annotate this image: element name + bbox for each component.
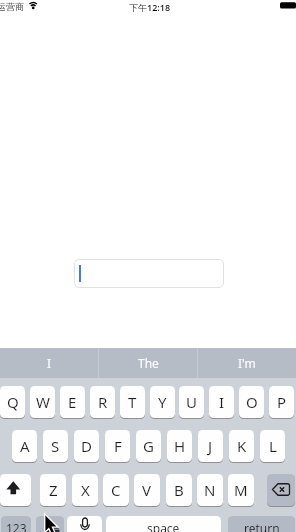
button[interactable]: [106, 516, 221, 532]
staticText: G: [143, 436, 154, 456]
staticText: 下午12:18: [129, 1, 171, 13]
staticText: Y: [158, 392, 167, 412]
button[interactable]: [267, 474, 295, 506]
button[interactable]: [36, 516, 64, 532]
button[interactable]: K: [229, 430, 254, 462]
button[interactable]: [74, 259, 224, 288]
staticText: D: [81, 436, 92, 456]
button[interactable]: G: [136, 430, 161, 462]
button[interactable]: S: [43, 430, 68, 462]
staticText: X: [81, 480, 90, 500]
staticText: I: [219, 392, 225, 412]
button[interactable]: I: [0, 348, 98, 378]
button[interactable]: R: [90, 386, 115, 418]
button[interactable]: [67, 516, 102, 532]
button[interactable]: V: [134, 474, 160, 506]
staticText: R: [98, 392, 108, 412]
button[interactable]: X: [72, 474, 98, 506]
button[interactable]: [0, 474, 31, 506]
staticText: B: [174, 480, 184, 500]
staticText: A: [20, 436, 30, 456]
staticText: I: [47, 355, 52, 371]
button[interactable]: A: [12, 430, 37, 462]
staticText: Q: [7, 392, 19, 412]
button[interactable]: The: [99, 348, 197, 378]
staticText: return: [244, 520, 280, 532]
button[interactable]: C: [103, 474, 129, 506]
button[interactable]: I'm: [198, 348, 296, 378]
button[interactable]: Q: [0, 386, 25, 418]
button[interactable]: T: [120, 386, 145, 418]
button[interactable]: I: [209, 386, 234, 418]
button[interactable]: E: [60, 386, 85, 418]
staticText: F: [114, 436, 122, 456]
button[interactable]: [228, 516, 295, 532]
button[interactable]: [1, 516, 31, 532]
staticText: V: [142, 480, 152, 500]
button[interactable]: H: [167, 430, 192, 462]
button[interactable]: O: [239, 386, 264, 418]
button[interactable]: M: [228, 474, 254, 506]
button[interactable]: P: [269, 386, 294, 418]
button[interactable]: J: [198, 430, 223, 462]
staticText: M: [234, 480, 248, 500]
staticText: P: [277, 392, 287, 412]
staticText: U: [186, 392, 197, 412]
staticText: N: [204, 480, 216, 500]
staticText: C: [111, 480, 121, 500]
staticText: L: [269, 436, 277, 456]
staticText: K: [237, 436, 247, 456]
button[interactable]: N: [197, 474, 223, 506]
button[interactable]: U: [179, 386, 204, 418]
staticText: E: [68, 392, 77, 412]
staticText: The: [138, 355, 159, 371]
staticText: H: [174, 436, 186, 456]
button[interactable]: L: [260, 430, 285, 462]
staticText: J: [208, 436, 213, 456]
button[interactable]: Z: [40, 474, 66, 506]
staticText: Z: [49, 480, 58, 500]
button[interactable]: D: [74, 430, 99, 462]
button[interactable]: W: [30, 386, 55, 418]
staticText: W: [36, 392, 50, 412]
staticText: I'm: [238, 355, 256, 371]
staticText: S: [51, 436, 60, 456]
staticText: 运营商: [0, 1, 24, 12]
staticText: space: [147, 520, 180, 532]
button[interactable]: F: [105, 430, 130, 462]
button[interactable]: B: [166, 474, 192, 506]
staticText: T: [128, 392, 137, 412]
button[interactable]: Y: [150, 386, 175, 418]
staticText: 123: [6, 520, 27, 532]
staticText: O: [246, 392, 258, 412]
